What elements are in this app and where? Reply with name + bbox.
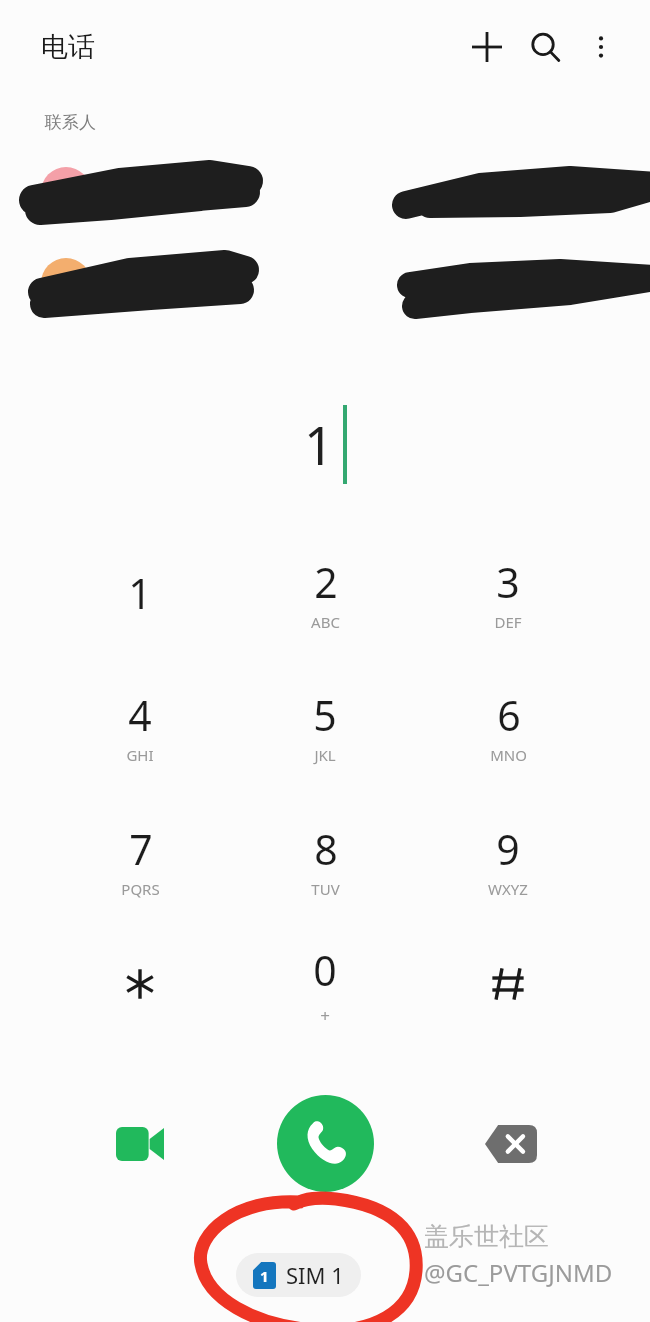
- staticText: @GC_PVTGJNMD: [424, 1256, 613, 1289]
- staticText: SIM 1: [286, 1260, 344, 1290]
- staticText: 3: [496, 554, 520, 610]
- button[interactable]: 5: [263, 670, 387, 782]
- staticText: 1: [260, 1266, 269, 1286]
- button[interactable]: 9: [446, 804, 570, 916]
- staticText: TUV: [311, 879, 340, 899]
- staticText: 8: [314, 821, 338, 877]
- button[interactable]: 6: [446, 670, 570, 782]
- staticText: ABC: [311, 612, 340, 632]
- staticText: DEF: [494, 612, 522, 632]
- staticText: 1: [128, 565, 152, 621]
- staticText: 1: [304, 409, 334, 480]
- button[interactable]: [78, 928, 202, 1040]
- staticText: 盖乐世社区: [424, 1221, 549, 1252]
- button[interactable]: More options: [574, 20, 628, 74]
- staticText: 4: [128, 687, 152, 743]
- button[interactable]: Search: [516, 18, 574, 76]
- button[interactable]: 2: [263, 537, 387, 649]
- staticText: 联系人: [45, 112, 96, 133]
- staticText: 6: [497, 687, 521, 743]
- staticText: PQRS: [121, 879, 160, 899]
- button[interactable]: 8: [263, 804, 387, 916]
- staticText: +: [320, 1004, 330, 1027]
- button[interactable]: 3: [446, 537, 570, 649]
- staticText: 2: [314, 554, 338, 610]
- staticText: 9: [496, 821, 520, 877]
- button[interactable]: 1: [78, 537, 202, 649]
- button[interactable]: Backspace: [468, 1102, 552, 1186]
- staticText: 电话: [41, 30, 95, 64]
- button[interactable]: Add contact: [458, 18, 516, 76]
- staticText: GHI: [126, 745, 154, 765]
- staticText: MNO: [490, 745, 527, 765]
- button[interactable]: 7: [78, 804, 202, 916]
- button[interactable]: 0: [263, 928, 387, 1040]
- button[interactable]: [446, 928, 570, 1040]
- staticText: 7: [129, 821, 153, 877]
- button[interactable]: 4: [78, 670, 202, 782]
- staticText: 0: [313, 942, 337, 998]
- staticText: 5: [313, 687, 337, 743]
- staticText: WXYZ: [488, 879, 528, 899]
- button[interactable]: 1: [236, 1253, 361, 1297]
- button[interactable]: Call: [277, 1095, 374, 1192]
- staticText: JKL: [314, 745, 336, 765]
- button[interactable]: Video call: [98, 1102, 182, 1186]
